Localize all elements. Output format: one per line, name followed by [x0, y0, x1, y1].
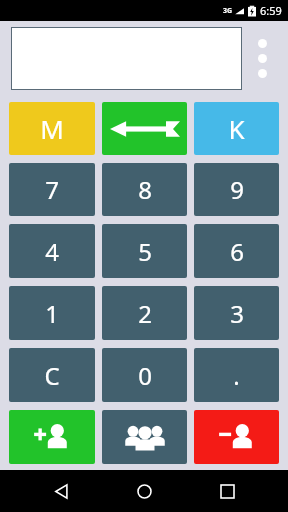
button[interactable]: 2	[102, 286, 187, 340]
staticText: 9	[230, 173, 244, 206]
staticText: 8	[138, 173, 152, 206]
staticText: 2	[138, 297, 152, 330]
button[interactable]: 1	[9, 286, 95, 340]
button[interactable]: Back	[39, 470, 83, 512]
button[interactable]: M	[9, 102, 95, 155]
button[interactable]: 9	[194, 163, 279, 216]
button[interactable]: Backspace	[102, 102, 187, 155]
staticText: K	[228, 111, 245, 146]
staticText: 1	[45, 297, 59, 330]
staticText: 6	[230, 235, 244, 268]
staticText: M	[40, 111, 64, 146]
staticText: 3G	[223, 6, 233, 16]
button[interactable]: 7	[9, 163, 95, 216]
button[interactable]: 3	[194, 286, 279, 340]
button[interactable]: 8	[102, 163, 187, 216]
staticText: .	[233, 359, 240, 392]
button[interactable]: Home	[122, 470, 166, 512]
staticText: 4	[45, 235, 59, 268]
button[interactable]: Remove person	[194, 410, 279, 464]
staticText: 6:59	[260, 3, 282, 18]
button[interactable]: 6	[194, 224, 279, 278]
button[interactable]: 4	[9, 224, 95, 278]
button[interactable]: Recent apps	[205, 470, 249, 512]
button[interactable]: 5	[102, 224, 187, 278]
button[interactable]: .	[194, 348, 279, 402]
staticText: C	[44, 359, 60, 392]
staticText: 3	[230, 297, 244, 330]
staticText: 5	[138, 235, 152, 268]
button[interactable]: More options	[242, 26, 282, 91]
button[interactable]: Add person	[9, 410, 95, 464]
staticText: 7	[45, 173, 59, 206]
staticText: 0	[138, 359, 152, 392]
button[interactable]: 0	[102, 348, 187, 402]
button[interactable]: K	[194, 102, 279, 155]
button[interactable]	[11, 27, 242, 90]
button[interactable]: Group	[102, 410, 187, 464]
button[interactable]: C	[9, 348, 95, 402]
